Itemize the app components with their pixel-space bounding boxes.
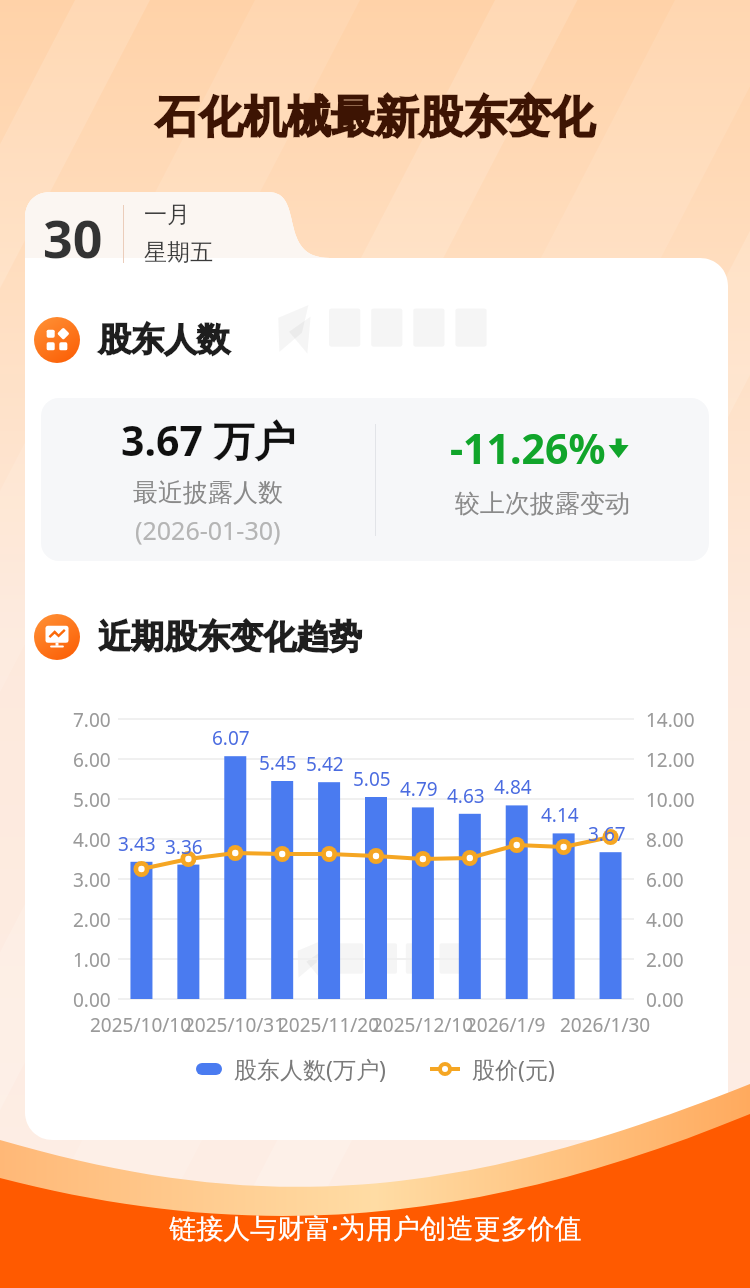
staticText: 股东人数(万户) xyxy=(234,1053,386,1084)
staticText: 4.79 xyxy=(400,776,438,802)
staticText: 2026/1/30 xyxy=(560,1012,651,1038)
staticText: 6.07 xyxy=(212,725,250,751)
staticText: 10.00 xyxy=(646,787,695,813)
staticText: 14.00 xyxy=(646,707,695,733)
staticText: 6.00 xyxy=(646,867,684,893)
staticText: 0.00 xyxy=(73,987,111,1013)
staticText: 5.05 xyxy=(353,766,391,792)
staticText: 5.00 xyxy=(73,787,111,813)
other: 近期股东变化趋势 xyxy=(34,614,80,660)
staticText: 一月 xyxy=(144,200,190,229)
staticText: 2025/12/10 xyxy=(372,1012,474,1038)
staticText: 2025/10/10 xyxy=(90,1012,192,1038)
staticText: (2026-01-30) xyxy=(135,513,281,547)
staticText: -11.26% xyxy=(450,420,606,476)
staticText: 2.00 xyxy=(73,907,111,933)
staticText: 4.14 xyxy=(541,802,579,828)
staticText: 30 xyxy=(43,202,103,273)
staticText: 3.00 xyxy=(73,867,111,893)
button[interactable]: 股价(元) xyxy=(430,1053,555,1084)
staticText: 2026/1/9 xyxy=(466,1012,546,1038)
staticText: 星期五 xyxy=(144,238,213,267)
staticText: 4.00 xyxy=(73,827,111,853)
other: 股东人数 xyxy=(34,317,80,363)
staticText: 2025/11/20 xyxy=(278,1012,380,1038)
staticText: 8.00 xyxy=(646,827,684,853)
staticText: 0.00 xyxy=(646,987,684,1013)
staticText: 近期股东变化趋势 xyxy=(98,616,362,658)
staticText: 7.00 xyxy=(73,707,111,733)
staticText: 石化机械最新股东变化 xyxy=(155,90,595,145)
staticText: 3.67 万户 xyxy=(121,412,296,468)
staticText: 1.00 xyxy=(73,947,111,973)
staticText: 12.00 xyxy=(646,747,695,773)
staticText: 5.45 xyxy=(259,750,297,776)
staticText: 6.00 xyxy=(73,747,111,773)
button[interactable]: 近期股东变化趋势 xyxy=(34,614,362,660)
staticText: 3.36 xyxy=(165,834,203,860)
staticText: 较上次披露变动 xyxy=(455,488,630,519)
staticText: 4.00 xyxy=(646,907,684,933)
staticText: 4.63 xyxy=(447,783,485,809)
staticText: 股价(元) xyxy=(472,1053,555,1084)
staticText: 最近披露人数 xyxy=(133,477,283,508)
staticText: 2.00 xyxy=(646,947,684,973)
button[interactable]: 30 xyxy=(43,198,213,269)
staticText: 4.84 xyxy=(494,774,532,800)
staticText: 2025/10/31 xyxy=(184,1012,286,1038)
staticText: 股东人数 xyxy=(98,319,230,361)
staticText: 链接人与财富·为用户创造更多价值 xyxy=(169,1209,582,1246)
staticText: 3.67 xyxy=(588,821,626,847)
staticText: 5.42 xyxy=(306,751,344,777)
button[interactable]: 股东人数 xyxy=(34,317,230,363)
button[interactable]: 股东人数(万户) xyxy=(196,1053,386,1084)
button[interactable]: 3.67 万户 xyxy=(41,398,709,561)
staticText: 3.43 xyxy=(118,831,156,857)
